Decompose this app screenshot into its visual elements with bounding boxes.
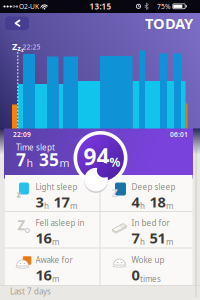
staticText: m [59,156,69,170]
staticText: z [21,46,24,54]
staticText: 06:01 [170,130,188,139]
staticText: 7 [16,148,26,171]
staticText: m [52,236,59,247]
staticText: Z [12,40,17,53]
staticText: Deep sleep [131,181,175,192]
staticText: m [70,200,77,211]
staticText: z [17,44,20,53]
staticText: 17 [49,192,69,212]
staticText: Fell asleep in [35,217,84,228]
staticText: times [140,273,161,284]
staticText: h [140,200,145,211]
staticText: 35 [34,148,59,171]
staticText: h [26,156,33,170]
staticText: Last 7 days [10,286,51,297]
staticText: 18 [145,192,165,212]
staticText: 22:09 [13,130,31,139]
staticText: In bed for [131,217,169,228]
staticText: 22:25 [22,43,40,51]
staticText: 16 [35,228,51,248]
staticText: Z [111,186,117,200]
staticText: m [166,236,173,247]
staticText: Awake for [35,254,72,265]
staticText: z [16,188,21,200]
staticText: 75% [157,2,171,11]
staticText: TODAY [145,13,193,33]
staticText: 51 [145,228,165,248]
staticText: h [140,236,145,247]
staticText: 3 [35,192,43,212]
staticText: Time slept [16,142,55,153]
staticText: h [44,200,49,211]
staticText: 4 [131,192,139,212]
staticText: % [109,154,120,170]
button[interactable]: Back [5,16,29,30]
staticText: 0 [131,265,139,285]
staticText: O2-UK [19,2,39,11]
staticText: 13:15 [89,1,111,12]
staticText: 7 [131,228,139,248]
staticText: Woke up [131,254,164,265]
staticText: 16 [35,265,51,285]
staticText: m [52,273,59,284]
staticText: m [166,200,173,211]
staticText: Light sleep [35,181,77,192]
staticText: Z [17,216,25,234]
staticText: 94 [83,141,109,171]
